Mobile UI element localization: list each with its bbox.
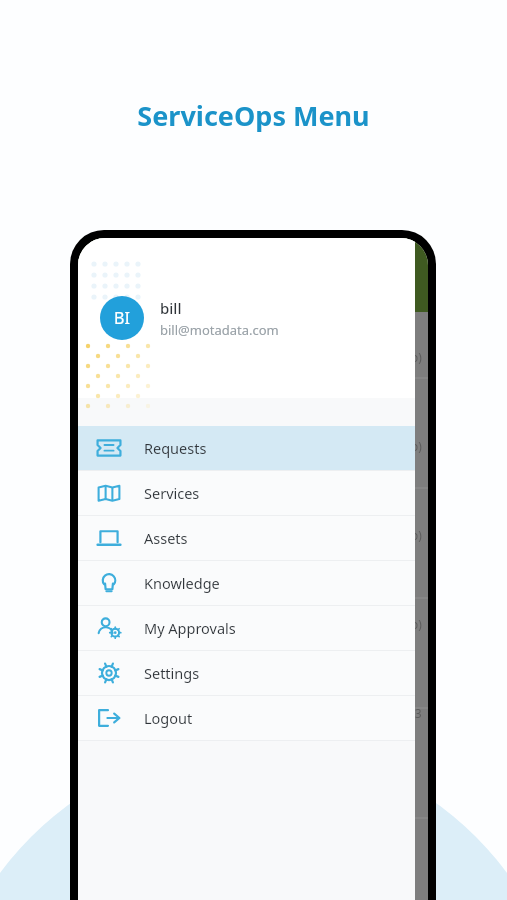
staticText: Settings: [144, 663, 200, 683]
staticText: Logout: [144, 708, 193, 728]
staticText: ... ago): [384, 616, 422, 632]
staticText: My Approvals: [144, 618, 236, 638]
staticText: Knowledge: [144, 573, 220, 593]
button[interactable]: Logout: [78, 696, 415, 740]
staticText: BI: [114, 307, 130, 329]
staticText: Assets: [144, 528, 188, 548]
staticText: ... ago): [384, 349, 422, 365]
staticText: bill@motadata.com: [160, 321, 279, 339]
button[interactable]: My Approvals: [78, 606, 415, 650]
staticText: Services: [144, 483, 200, 503]
staticText: ... ago): [384, 527, 422, 543]
button[interactable]: Requests: [78, 426, 415, 470]
button[interactable]: Knowledge: [78, 561, 415, 605]
staticText: ServiceOps Menu: [137, 97, 370, 134]
button[interactable]: Services: [78, 471, 415, 515]
staticText: ... 3: [402, 705, 422, 721]
staticText: bill: [160, 298, 182, 318]
button[interactable]: Settings: [78, 651, 415, 695]
staticText: Requests: [144, 438, 207, 458]
staticText: ... ago): [384, 438, 422, 454]
button[interactable]: Assets: [78, 516, 415, 560]
